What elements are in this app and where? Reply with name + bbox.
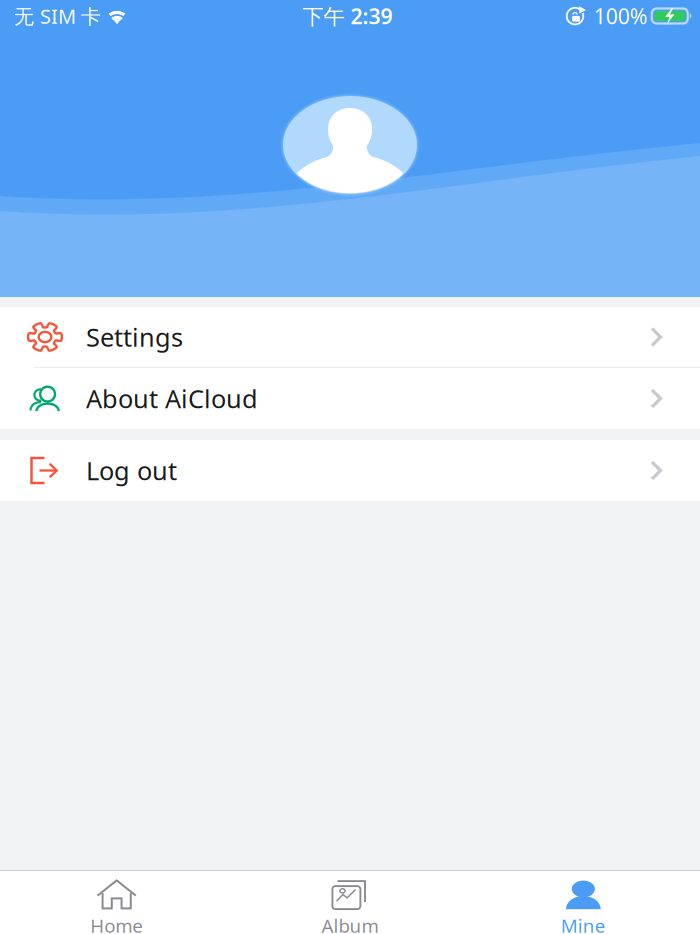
staticText: Log out bbox=[86, 454, 177, 487]
staticText: About AiCloud bbox=[86, 382, 258, 415]
button[interactable]: Settings bbox=[0, 307, 700, 368]
staticText: Settings bbox=[86, 320, 183, 354]
button[interactable]: Mine bbox=[467, 871, 700, 934]
button[interactable]: Home bbox=[0, 871, 233, 934]
button[interactable]: About AiCloud bbox=[0, 368, 700, 429]
staticText: Mine bbox=[561, 913, 606, 934]
staticText: Home bbox=[90, 913, 143, 934]
button[interactable]: Album bbox=[233, 871, 467, 934]
staticText: 100% bbox=[594, 2, 648, 30]
staticText: Album bbox=[321, 913, 378, 934]
staticText: 下午 2:39 bbox=[302, 2, 392, 30]
button[interactable]: Log out bbox=[0, 440, 700, 501]
staticText: 无 SIM 卡 bbox=[14, 3, 101, 29]
